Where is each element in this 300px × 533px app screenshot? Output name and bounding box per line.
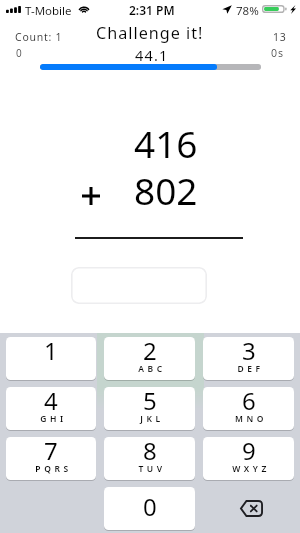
staticText: 416 [134,118,198,168]
staticText: 0s [271,46,285,60]
staticText: 6 [242,387,256,417]
staticText: DEF [237,363,264,375]
staticText: TUV [138,463,166,475]
staticText: 13 [273,30,287,44]
staticText: 3 [242,337,256,367]
button[interactable]: 0 [104,487,195,530]
button[interactable] [71,267,207,304]
staticText: 2:31 PM [129,2,175,18]
button[interactable]: 7 [6,437,96,480]
staticText: JKL [140,413,164,425]
staticText: WXYZ [232,463,270,475]
staticText: T-Mobile [25,3,72,19]
button[interactable]: 1 [6,337,96,380]
button[interactable]: 6 [203,387,294,430]
staticText: MNO [235,413,267,425]
staticText: 8 [143,437,157,467]
staticText: ABC [138,363,166,375]
staticText: PQRS [35,463,72,475]
staticText: 44.1 [135,45,169,65]
staticText: Challenge it! [96,22,204,44]
button[interactable]: 3 [203,337,294,380]
button[interactable]: 8 [104,437,195,480]
staticText: GHI [40,413,67,425]
staticText: 1 [44,337,58,367]
staticText: 4 [44,387,58,417]
staticText: 5 [143,387,157,417]
staticText: 0 [16,46,22,60]
button[interactable]: 2 [104,337,195,380]
staticText: Count: 1 [15,30,63,44]
staticText: 0 [143,490,157,523]
staticText: 78% [236,3,259,19]
staticText: 2 [143,337,157,367]
button[interactable]: 5 [104,387,195,430]
button[interactable]: 9 [203,437,294,480]
staticText: 7 [44,437,58,467]
button[interactable]: Backspace [203,487,294,530]
button[interactable]: 4 [6,387,96,430]
staticText: 802 [134,165,198,215]
staticText: 9 [242,437,256,467]
